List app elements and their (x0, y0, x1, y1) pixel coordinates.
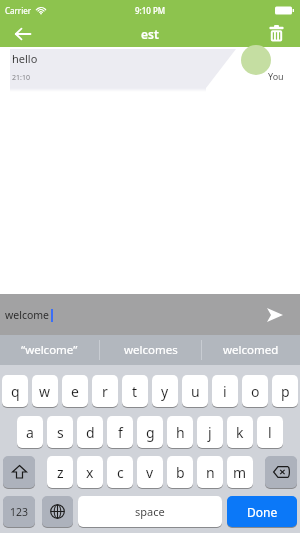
staticText: d (86, 423, 95, 442)
button[interactable]: c (107, 456, 133, 488)
button[interactable]: welcomes (100, 335, 201, 365)
staticText: a (26, 423, 34, 442)
button[interactable]: Done (227, 496, 297, 527)
button[interactable] (265, 456, 297, 488)
staticText: space (135, 504, 165, 519)
button[interactable]: y (152, 375, 178, 407)
staticText: l (268, 423, 272, 442)
button[interactable]: v (137, 456, 163, 488)
staticText: z (57, 463, 64, 482)
staticText: n (206, 463, 215, 482)
button[interactable]: i (212, 375, 238, 407)
button[interactable]: r (92, 375, 118, 407)
staticText: r (102, 382, 108, 401)
staticText: welcome (5, 308, 50, 322)
button[interactable]: n (197, 456, 223, 488)
button[interactable]: 123 (3, 496, 35, 527)
staticText: f (118, 423, 123, 442)
staticText: You (268, 70, 284, 82)
button[interactable]: t (122, 375, 148, 407)
button[interactable]: x (77, 456, 103, 488)
button[interactable]: a (17, 416, 43, 448)
button[interactable] (3, 456, 35, 488)
staticText: t (132, 382, 138, 401)
button[interactable]: b (167, 456, 193, 488)
button[interactable]: “welcome” (0, 335, 99, 365)
staticText: Done (247, 504, 278, 520)
button[interactable]: s (47, 416, 73, 448)
staticText: x (86, 463, 94, 482)
staticText: w (39, 382, 51, 401)
staticText: h (176, 423, 185, 442)
staticText: welcomes (124, 342, 178, 358)
button[interactable] (8, 20, 38, 47)
staticText: q (11, 382, 20, 401)
button[interactable]: z (47, 456, 73, 488)
staticText: j (208, 423, 212, 442)
staticText: est (141, 26, 159, 42)
staticText: 123 (10, 505, 29, 519)
button[interactable]: g (137, 416, 163, 448)
staticText: c (117, 463, 124, 482)
button[interactable]: w (32, 375, 58, 407)
button[interactable]: h (167, 416, 193, 448)
button[interactable]: l (257, 416, 283, 448)
button[interactable]: space (78, 496, 222, 527)
staticText: k (236, 423, 244, 442)
button[interactable] (264, 20, 288, 47)
button[interactable]: j (197, 416, 223, 448)
button[interactable]: q (2, 375, 28, 407)
staticText: m (233, 463, 247, 482)
button[interactable]: hello (12, 51, 38, 83)
staticText: g (146, 423, 155, 442)
staticText: p (281, 382, 290, 401)
staticText: v (146, 463, 154, 482)
staticText: s (57, 423, 64, 442)
button[interactable]: e (62, 375, 88, 407)
staticText: hello (12, 51, 38, 66)
button[interactable]: m (227, 456, 253, 488)
staticText: welcomed (223, 342, 279, 358)
button[interactable]: u (182, 375, 208, 407)
staticText: 9:10 PM (135, 5, 166, 16)
button[interactable] (264, 304, 286, 326)
staticText: “welcome” (21, 342, 78, 358)
staticText: e (71, 382, 79, 401)
staticText: Carrier (5, 5, 32, 16)
button[interactable]: k (227, 416, 253, 448)
staticText: b (176, 463, 185, 482)
staticText: y (161, 382, 169, 401)
staticText: o (251, 382, 260, 401)
button[interactable]: d (77, 416, 103, 448)
button[interactable]: o (242, 375, 268, 407)
button[interactable]: p (272, 375, 298, 407)
button[interactable] (42, 496, 73, 527)
button[interactable]: f (107, 416, 133, 448)
button[interactable]: welcomed (202, 335, 300, 365)
staticText: u (191, 382, 200, 401)
staticText: 21:10 (12, 73, 30, 83)
staticText: i (223, 382, 227, 401)
